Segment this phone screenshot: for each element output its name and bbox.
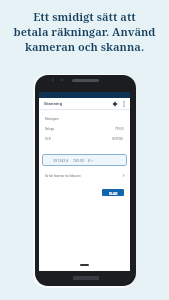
button[interactable]: More options bbox=[119, 99, 128, 108]
staticText: 5697065 bbox=[112, 137, 124, 141]
staticText: 391243 8 749 00 8 > bbox=[53, 158, 93, 163]
staticText: Belopp bbox=[45, 127, 55, 131]
staticText: 799,00 bbox=[115, 127, 124, 131]
button[interactable]: Så här skannar du fakturan bbox=[39, 171, 130, 180]
staticText: KLAR bbox=[109, 191, 118, 195]
staticText: Skanning bbox=[44, 101, 63, 106]
button[interactable]: KLAR bbox=[102, 189, 124, 196]
staticText: OCR bbox=[45, 137, 51, 141]
staticText: Ett smidigt sätt att betala räkningar. A… bbox=[0, 9, 169, 54]
staticText: Mottagare bbox=[45, 117, 59, 121]
button[interactable]: Add bbox=[110, 99, 119, 108]
staticText: Så här skannar du fakturan bbox=[45, 174, 81, 178]
